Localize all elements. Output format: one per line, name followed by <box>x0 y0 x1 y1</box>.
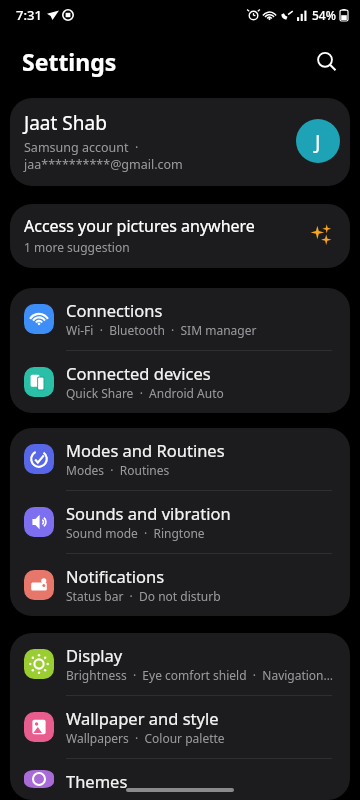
button[interactable]: Modes and Routines <box>10 428 350 490</box>
staticText: 7:31 <box>16 6 42 24</box>
staticText: Notifications <box>66 565 165 587</box>
button[interactable]: Themes <box>10 759 350 800</box>
button[interactable]: Connections <box>10 288 350 350</box>
staticText: Themes <box>66 770 128 788</box>
staticText: 1 more suggestion <box>24 239 130 255</box>
staticText: Access your pictures anywhere <box>24 215 255 237</box>
button[interactable]: Search <box>306 41 346 81</box>
staticText: Wi-Fi · Bluetooth · SIM manager <box>66 322 257 338</box>
staticText: Connected devices <box>66 362 211 384</box>
staticText: Sound mode · Ringtone <box>66 525 205 541</box>
staticText: Sounds and vibration <box>66 502 231 524</box>
staticText: Quick Share · Android Auto <box>66 385 224 401</box>
staticText: J <box>315 128 321 155</box>
staticText: Brightness · Eye comfort shield · Naviga… <box>66 667 336 683</box>
staticText: Jaat Shab <box>24 110 107 136</box>
button[interactable]: Sounds and vibration <box>10 491 350 553</box>
button[interactable]: Wallpaper and style <box>10 696 350 758</box>
button[interactable]: Notifications <box>10 554 350 616</box>
staticText: Modes · Routines <box>66 462 170 478</box>
button[interactable]: Access your pictures anywhere <box>10 204 350 268</box>
staticText: Connections <box>66 299 163 321</box>
staticText: Settings <box>22 46 117 77</box>
button[interactable]: Jaat Shab <box>10 98 350 186</box>
staticText: Wallpapers · Colour palette <box>66 730 225 746</box>
staticText: Display <box>66 644 123 666</box>
staticText: 54% <box>312 7 336 23</box>
button[interactable]: Display <box>10 633 350 695</box>
staticText: Modes and Routines <box>66 439 225 461</box>
staticText: Status bar · Do not disturb <box>66 588 221 604</box>
button[interactable]: Connected devices <box>10 351 350 413</box>
staticText: Wallpaper and style <box>66 707 219 729</box>
staticText: Samsung account · jaa**********@gmail.co… <box>24 139 288 172</box>
